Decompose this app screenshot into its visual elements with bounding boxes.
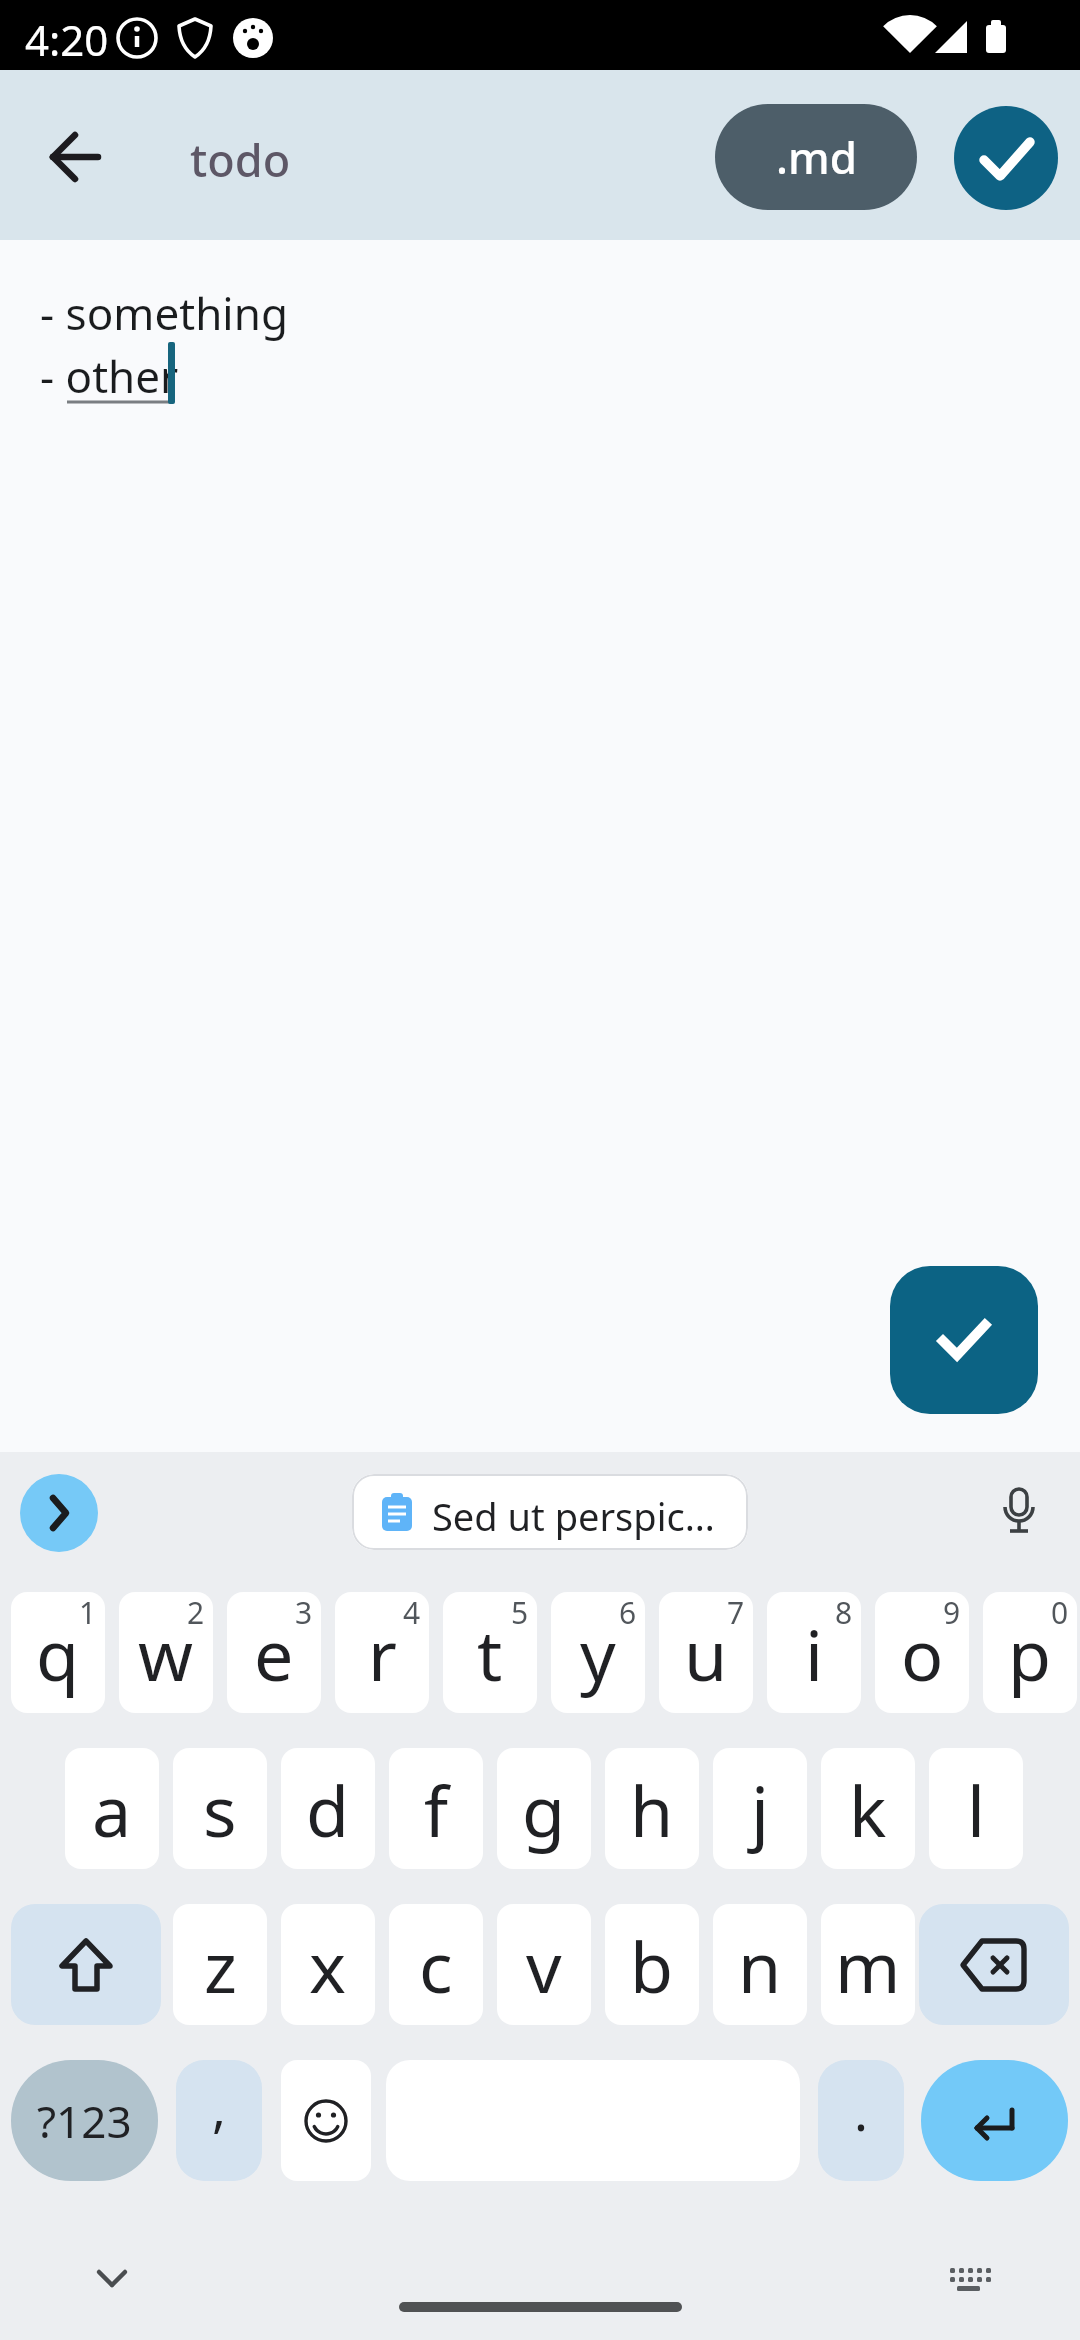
staticText: - other (40, 346, 179, 406)
staticText: 4 (403, 1592, 421, 1633)
button[interactable] (954, 106, 1058, 210)
button[interactable]: j (713, 1748, 807, 1869)
staticText: v (526, 1918, 562, 2013)
button[interactable]: l (929, 1748, 1023, 1869)
button[interactable]: f (389, 1748, 483, 1869)
staticText: e (254, 1606, 294, 1701)
button[interactable] (35, 109, 115, 189)
button[interactable]: . (818, 2060, 904, 2181)
button[interactable]: s (173, 1748, 267, 1869)
button[interactable] (890, 1266, 1038, 1414)
staticText: p (1008, 1606, 1052, 1701)
staticText: c (419, 1918, 453, 2013)
button[interactable]: a (65, 1748, 159, 1869)
staticText: w (138, 1606, 194, 1701)
button[interactable]: z (173, 1904, 267, 2025)
button[interactable]: y (551, 1592, 645, 1713)
button[interactable]: d (281, 1748, 375, 1869)
staticText: m (835, 1918, 901, 2013)
button[interactable]: u (659, 1592, 753, 1713)
staticText: h (630, 1762, 674, 1857)
staticText: .md (776, 127, 857, 187)
button[interactable]: e (227, 1592, 321, 1713)
button[interactable]: c (389, 1904, 483, 2025)
staticText: 2 (187, 1592, 205, 1633)
staticText: t (477, 1606, 503, 1701)
button[interactable]: h (605, 1748, 699, 1869)
staticText: todo (190, 129, 291, 190)
staticText: 8 (835, 1592, 853, 1633)
button[interactable]: n (713, 1904, 807, 2025)
staticText: - something (40, 283, 288, 343)
staticText: o (901, 1606, 944, 1701)
button[interactable]: t (443, 1592, 537, 1713)
button[interactable]: v (497, 1904, 591, 2025)
staticText: z (204, 1918, 237, 2013)
button[interactable] (281, 2060, 371, 2181)
staticText: u (684, 1606, 728, 1701)
staticText: k (849, 1762, 887, 1857)
button[interactable]: , (176, 2060, 262, 2181)
staticText: . (854, 2075, 868, 2146)
staticText: 3 (295, 1592, 313, 1633)
staticText: i (805, 1606, 824, 1701)
staticText: y (580, 1606, 616, 1701)
button[interactable] (11, 1904, 161, 2025)
staticText: b (630, 1918, 674, 2013)
staticText: q (36, 1606, 80, 1701)
button[interactable]: r (335, 1592, 429, 1713)
button[interactable]: w (119, 1592, 213, 1713)
staticText: 7 (727, 1592, 745, 1633)
staticText: 0 (1051, 1592, 1069, 1633)
staticText: a (92, 1762, 132, 1857)
button[interactable]: o (875, 1592, 969, 1713)
staticText: d (306, 1762, 350, 1857)
staticText: g (522, 1762, 566, 1857)
staticText: 6 (619, 1592, 637, 1633)
button[interactable]: k (821, 1748, 915, 1869)
button[interactable]: i (767, 1592, 861, 1713)
staticText: Sed ut perspic… (432, 1490, 715, 1542)
button[interactable]: ?123 (11, 2060, 158, 2181)
button[interactable]: p (983, 1592, 1077, 1713)
staticText: x (309, 1918, 347, 2013)
staticText: j (751, 1762, 770, 1857)
staticText: 5 (511, 1592, 529, 1633)
staticText: ?123 (37, 2091, 132, 2151)
button[interactable]: .md (715, 104, 917, 210)
staticText: 1 (79, 1592, 97, 1633)
staticText: , (212, 2071, 226, 2142)
staticText: s (203, 1762, 237, 1857)
button[interactable] (20, 1474, 98, 1552)
button[interactable]: g (497, 1748, 591, 1869)
button[interactable]: Sed ut perspic… (352, 1474, 748, 1550)
staticText: 4:20 (25, 11, 109, 68)
button[interactable]: m (821, 1904, 915, 2025)
staticText: 9 (943, 1592, 961, 1633)
button[interactable]: b (605, 1904, 699, 2025)
button[interactable] (919, 1904, 1069, 2025)
staticText: r (368, 1606, 397, 1701)
button[interactable]: q (11, 1592, 105, 1713)
staticText: n (738, 1918, 782, 2013)
button[interactable] (921, 2060, 1068, 2181)
staticText: l (967, 1762, 986, 1857)
staticText: f (424, 1762, 449, 1857)
button[interactable]: x (281, 1904, 375, 2025)
